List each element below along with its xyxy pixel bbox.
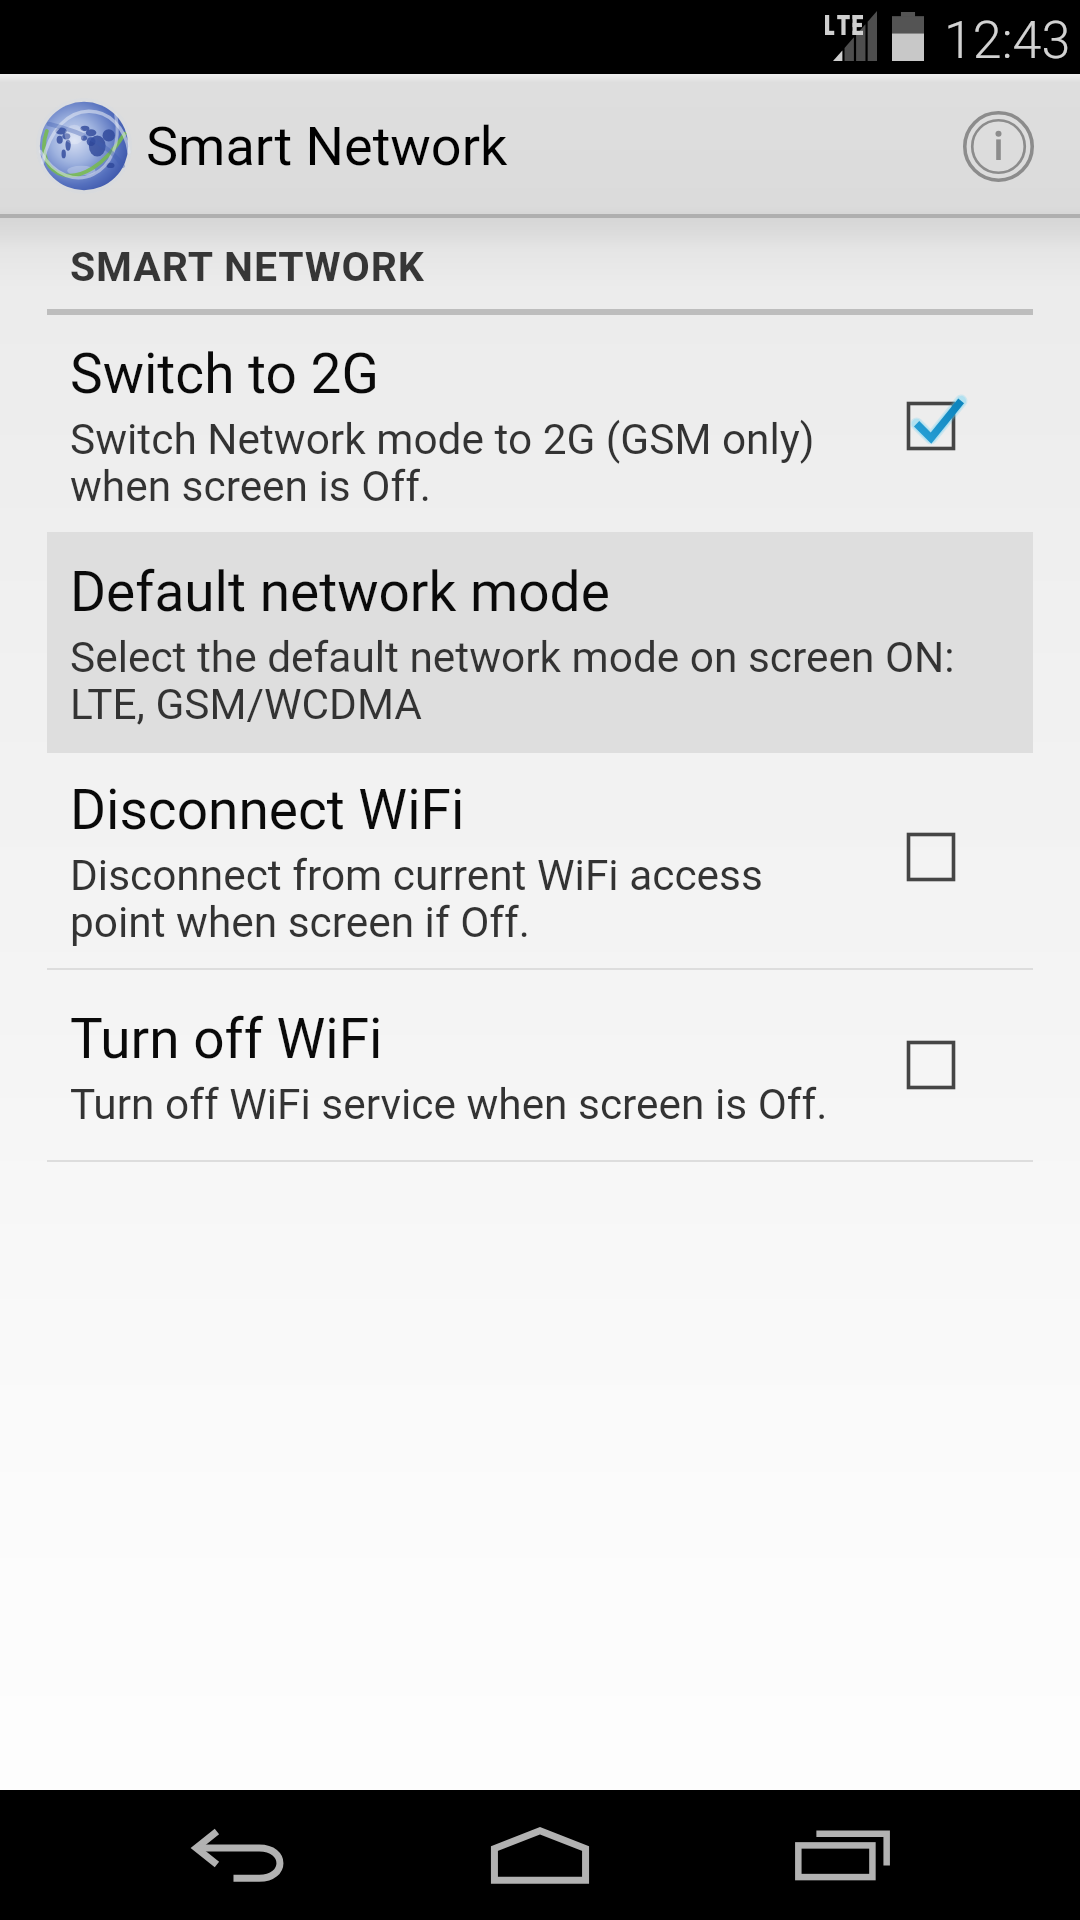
staticText: Disconnect WiFi <box>70 778 465 842</box>
button[interactable]: Switch to 2G <box>0 315 1080 532</box>
button[interactable]: Home <box>360 1790 720 1920</box>
button[interactable]: Default network mode <box>47 532 1033 753</box>
button[interactable]: Turn off WiFi <box>0 970 1080 1160</box>
staticText: Switch to 2G <box>70 342 379 406</box>
staticText: 12:43 <box>944 10 1071 71</box>
staticText: Select the default network mode on scree… <box>70 633 955 730</box>
button[interactable]: Unchecked <box>876 1015 986 1115</box>
staticText: Switch Network mode to 2G (GSM only) whe… <box>70 415 815 512</box>
button[interactable]: Unchecked <box>876 807 986 907</box>
button[interactable]: Checked <box>876 376 986 476</box>
button[interactable]: Disconnect WiFi <box>0 753 1080 968</box>
staticText: Default network mode <box>70 560 610 624</box>
button[interactable]: Recents <box>662 1790 1022 1920</box>
staticText: Turn off WiFi <box>70 1007 383 1071</box>
staticText: Smart Network <box>146 115 508 178</box>
staticText: Turn off WiFi service when screen is Off… <box>70 1080 828 1130</box>
staticText: SMART NETWORK <box>70 243 425 291</box>
staticText: Disconnect from current WiFi access poin… <box>70 851 763 948</box>
button[interactable]: Info <box>938 86 1058 206</box>
button[interactable]: Back <box>59 1790 419 1920</box>
